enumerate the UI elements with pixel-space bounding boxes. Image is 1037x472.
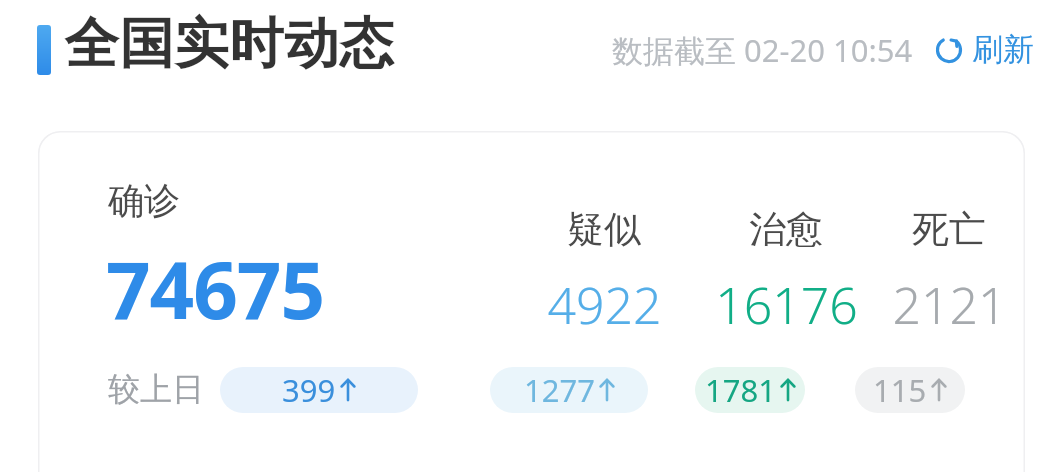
staticText: 4922: [547, 271, 662, 339]
other: 刷新: [933, 34, 965, 66]
staticText: 1277: [524, 369, 595, 411]
staticText: 16176: [715, 271, 858, 339]
staticText: 115: [873, 369, 927, 411]
button[interactable]: 1781: [695, 367, 805, 413]
staticText: 74675: [106, 236, 325, 342]
button[interactable]: 115: [855, 367, 965, 413]
staticText: 治愈: [749, 206, 823, 253]
staticText: 2121: [892, 271, 1007, 339]
staticText: 确诊: [108, 178, 180, 223]
button[interactable]: 疑似: [494, 206, 714, 339]
button[interactable]: 死亡: [839, 206, 1025, 339]
staticText: 全国实时动态: [64, 10, 394, 78]
staticText: 疑似: [567, 206, 641, 253]
staticText: 数据截至 02-20 10:54: [612, 29, 913, 71]
staticText: 399: [282, 369, 336, 411]
button[interactable]: 刷新: [931, 28, 1036, 71]
staticText: 1781: [705, 369, 776, 411]
staticText: 死亡: [912, 206, 986, 253]
button[interactable]: 399: [220, 367, 418, 413]
staticText: 刷新: [972, 30, 1034, 69]
button[interactable]: 治愈: [676, 206, 896, 339]
button[interactable]: 1277: [490, 367, 648, 413]
staticText: 较上日: [108, 369, 204, 409]
